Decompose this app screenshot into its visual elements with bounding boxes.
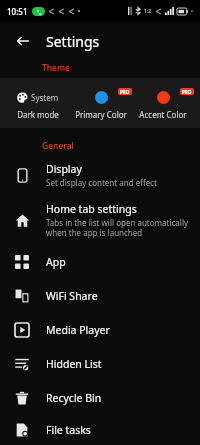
staticText: Tabs in the list will open automatically… [46,217,190,238]
button[interactable]: Display [0,155,200,195]
staticText: Display [46,162,82,176]
staticText: Primary Color [75,109,127,120]
staticText: PRO [182,89,192,95]
button[interactable]: Home tab settings [0,195,200,245]
staticText: WiFi Share [46,289,98,303]
button[interactable]: File tasks [0,415,200,445]
staticText: Settings [46,32,100,51]
button[interactable]: Back [10,28,36,54]
staticText: Recycle Bin [46,391,102,405]
staticText: 10:51 [7,6,28,17]
staticText: Accent Color [139,109,187,120]
staticText: Dark mode [17,109,59,120]
button[interactable]: Media Player [0,313,200,347]
button[interactable]: PRO [70,87,132,120]
staticText: Home tab settings [46,202,137,216]
button[interactable]: PRO [132,87,194,120]
staticText: Set display content and effect [46,177,157,188]
staticText: PRO [120,89,130,95]
button[interactable]: Hidden List [0,347,200,381]
staticText: Hidden List [46,357,102,371]
staticText: System [31,92,59,103]
button[interactable]: WiFi Share [0,279,200,313]
staticText: App [46,255,66,269]
staticText: File tasks [46,423,91,437]
button[interactable]: App [0,245,200,279]
staticText: Media Player [46,323,110,337]
button[interactable]: System [6,87,70,120]
staticText: 1:2 [144,8,152,15]
button[interactable]: Recycle Bin [0,381,200,415]
staticText: Theme [42,62,70,74]
staticText: General [42,140,74,152]
